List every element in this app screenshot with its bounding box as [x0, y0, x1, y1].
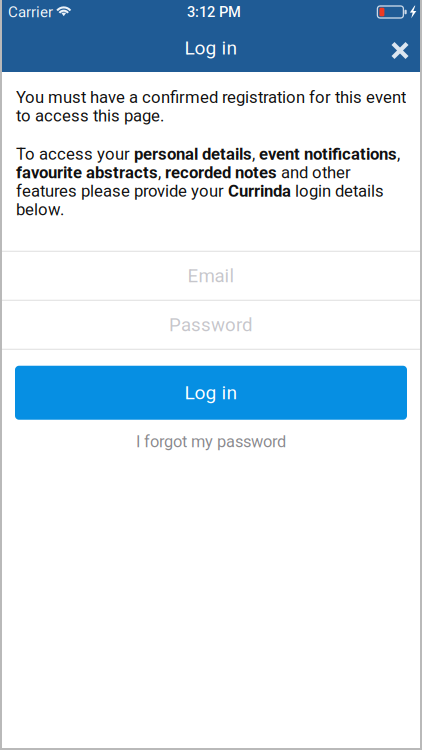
staticText: I forgot my password — [136, 432, 286, 451]
staticText: Log in — [184, 381, 237, 404]
staticText: Email — [187, 265, 234, 287]
staticText: 3:12 PM — [187, 3, 241, 21]
staticText: Log in — [184, 37, 237, 59]
staticText: To access your personal details, event n… — [16, 145, 400, 219]
staticText: Carrier — [8, 3, 53, 21]
button[interactable]: Email — [0, 252, 422, 300]
button[interactable]: Close — [378, 28, 422, 72]
button[interactable]: I forgot my password — [0, 420, 422, 464]
staticText: Password — [169, 314, 253, 336]
button[interactable]: Log in — [15, 366, 407, 420]
button[interactable]: Password — [0, 301, 422, 349]
staticText: You must have a confirmed registration f… — [16, 88, 406, 125]
